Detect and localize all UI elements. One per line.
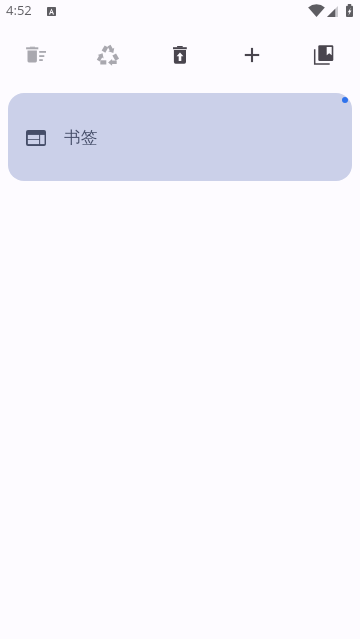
staticText: 书签	[64, 127, 98, 148]
button[interactable]: 书签	[8, 93, 352, 181]
button[interactable]: Delete all	[0, 28, 72, 82]
button[interactable]: Restore from trash	[144, 28, 216, 82]
button[interactable]: Recycle	[72, 28, 144, 82]
button[interactable]: Add	[216, 28, 288, 82]
button[interactable]: Bookmarks	[288, 28, 360, 82]
staticText: 4:52	[6, 1, 32, 19]
